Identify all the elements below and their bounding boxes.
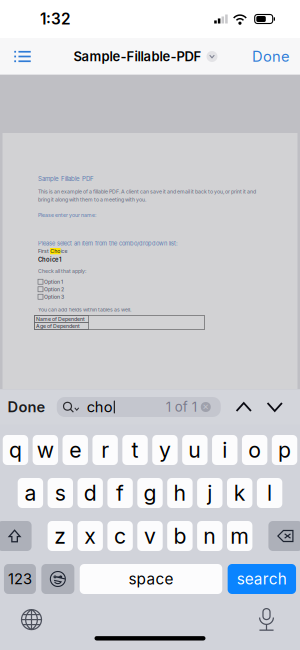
staticText: z	[54, 523, 66, 549]
button[interactable]: Next keyboard	[9, 606, 53, 634]
staticText: h	[173, 480, 186, 506]
button[interactable]: Next result	[260, 389, 290, 424]
staticText: First	[38, 248, 50, 254]
staticText: Done	[7, 398, 45, 416]
staticText: cho	[87, 398, 113, 416]
staticText: c	[114, 523, 126, 549]
staticText: y	[159, 437, 171, 463]
button[interactable]: r	[92, 435, 118, 465]
staticText: Choice 1	[38, 256, 61, 263]
button[interactable]: w	[33, 435, 58, 465]
staticText: j	[207, 480, 212, 506]
button[interactable]: m	[227, 521, 252, 551]
staticText: Cho	[50, 248, 60, 254]
staticText: This is an example of a fillable PDF. A …	[38, 188, 256, 195]
button[interactable]: i	[212, 435, 237, 465]
staticText: l	[267, 480, 272, 506]
staticText: Check all that apply:	[38, 268, 86, 274]
button[interactable]: z	[48, 521, 73, 551]
button[interactable]: Delete	[268, 521, 300, 551]
button[interactable]: b	[167, 521, 193, 551]
staticText: You can add fields within tables as well…	[38, 306, 131, 313]
staticText: x	[84, 523, 96, 549]
staticText: v	[144, 523, 156, 549]
staticText: Sample Fillable PDF	[38, 175, 94, 182]
staticText: w	[37, 437, 54, 463]
button[interactable]: g	[137, 478, 163, 508]
staticText: d	[84, 480, 97, 506]
staticText: u	[188, 437, 201, 463]
button[interactable]: p	[272, 435, 297, 465]
staticText: 1 of 1	[166, 399, 197, 415]
button[interactable]: e	[62, 435, 88, 465]
staticText: m	[230, 523, 249, 549]
button[interactable]: x	[77, 521, 103, 551]
staticText: e	[69, 437, 81, 463]
staticText: space	[128, 570, 173, 588]
staticText: Option 1	[44, 279, 63, 285]
button[interactable]: f	[107, 478, 133, 508]
button[interactable]: Document options	[206, 51, 217, 62]
button[interactable]: Previous result	[229, 389, 259, 424]
staticText: k	[234, 480, 246, 506]
staticText: i	[222, 437, 227, 463]
button[interactable]: v	[137, 521, 163, 551]
button[interactable]: 123	[4, 564, 36, 594]
staticText: ice	[61, 248, 68, 254]
staticText: Sample-Fillable-PDF	[73, 49, 201, 64]
staticText: q	[9, 437, 22, 463]
button[interactable]: k	[227, 478, 252, 508]
button[interactable]: a	[18, 478, 43, 508]
staticText: f	[116, 480, 124, 506]
button[interactable]: s	[48, 478, 73, 508]
button[interactable]: Dictation	[244, 606, 288, 634]
button[interactable]: space	[80, 564, 222, 594]
staticText: Age of Dependent	[36, 323, 80, 329]
button[interactable]: o	[242, 435, 267, 465]
button[interactable]: Thumbnails	[0, 38, 45, 75]
button[interactable]: Emoji	[41, 564, 74, 594]
staticText: ✕	[202, 402, 209, 412]
staticText: o	[248, 437, 261, 463]
button[interactable]: Done	[246, 38, 296, 75]
button[interactable]: h	[167, 478, 193, 508]
staticText: r	[101, 437, 109, 463]
staticText: 123	[8, 570, 32, 588]
staticText: Done	[252, 48, 290, 65]
button[interactable]: u	[182, 435, 208, 465]
staticText: Option 3	[44, 294, 64, 300]
button[interactable]: c	[107, 521, 133, 551]
staticText: t	[131, 437, 138, 463]
button[interactable]: d	[77, 478, 103, 508]
button[interactable]: Shift	[0, 521, 32, 551]
staticText: Please enter your name:	[38, 212, 96, 218]
staticText: g	[143, 480, 156, 506]
staticText: a	[24, 480, 36, 506]
staticText: Name of Dependent	[36, 316, 85, 322]
staticText: p	[278, 437, 291, 463]
staticText: s	[55, 480, 66, 506]
staticText: b	[173, 523, 186, 549]
button[interactable]: t	[122, 435, 148, 465]
staticText: bring it along with them to a meeting wi…	[38, 196, 146, 203]
staticText: n	[203, 523, 216, 549]
button[interactable]: j	[197, 478, 222, 508]
staticText: search	[237, 570, 287, 588]
button[interactable]: Done	[0, 389, 57, 424]
staticText: Please select an item from the combo/dro…	[38, 240, 178, 247]
button[interactable]: q	[3, 435, 28, 465]
button[interactable]: n	[197, 521, 222, 551]
staticText: 1:32	[40, 10, 71, 28]
button[interactable]: search	[228, 564, 296, 594]
button[interactable]: y	[152, 435, 178, 465]
button[interactable]: l	[257, 478, 282, 508]
staticText: Option 2	[44, 286, 64, 292]
